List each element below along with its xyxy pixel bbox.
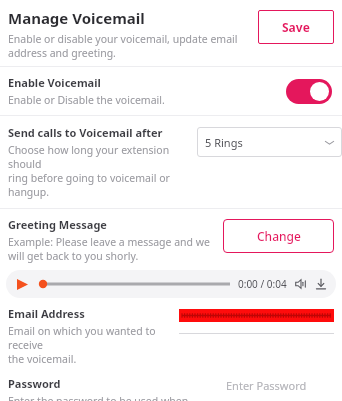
button[interactable]: Enable Voicemail toggle: [286, 79, 332, 104]
staticText: Enable Voicemail: [8, 75, 101, 90]
button[interactable]: Play: [14, 276, 30, 292]
staticText: Enter the password to be used when acces…: [8, 394, 222, 401]
button[interactable]: Save: [258, 10, 334, 44]
button[interactable]: Change: [223, 219, 334, 253]
staticText: Enable or Disable the voicemail.: [8, 93, 165, 107]
staticText: Email Address: [8, 306, 85, 321]
staticText: Manage Voicemail: [8, 8, 145, 28]
staticText: Change: [257, 228, 301, 244]
button[interactable]: Email address field: [179, 306, 334, 334]
button[interactable]: Password field: [226, 376, 334, 401]
button[interactable]: Download: [314, 277, 328, 291]
staticText: 5 Rings: [205, 135, 325, 150]
staticText: Choose how long your extension should ri…: [8, 143, 193, 199]
staticText: Email on which you wanted to receive the…: [8, 324, 173, 366]
staticText: Save: [282, 19, 310, 35]
staticText: Example: Please leave a message and we w…: [8, 235, 210, 263]
staticText: Enable or disable your voicemail, update…: [8, 32, 238, 60]
button[interactable]: 5 Rings: [197, 127, 342, 157]
button[interactable]: Volume: [294, 277, 308, 291]
staticText: Enter Password: [226, 378, 307, 393]
staticText: Password: [8, 376, 61, 391]
staticText: Send calls to Voicemail after: [8, 125, 163, 140]
staticText: Greeting Message: [8, 217, 107, 232]
staticText: 0:00 / 0:04: [238, 277, 287, 291]
